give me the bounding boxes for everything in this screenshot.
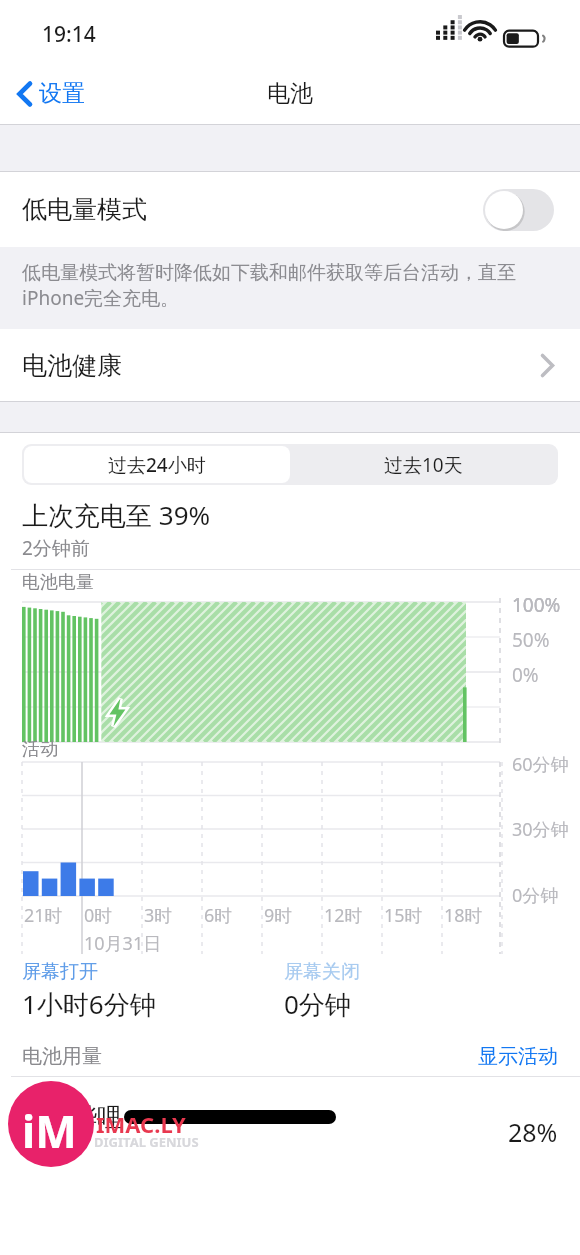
button[interactable]: 过去24小时	[24, 446, 290, 483]
button[interactable]: 低电量模式	[0, 172, 580, 247]
staticText: 9时	[264, 903, 293, 928]
staticText: 15时	[384, 903, 423, 928]
staticText: 过去24小时	[108, 452, 206, 478]
button[interactable]: 显示活动	[478, 1044, 580, 1069]
staticText: 2分钟前	[22, 535, 90, 561]
staticText: 低电量模式将暂时降低如下载和邮件获取等后台活动，直至	[22, 261, 516, 285]
staticText: 设置	[39, 79, 85, 108]
staticText: 上次充电至 39%	[22, 497, 211, 533]
staticText: 电池健康	[22, 350, 122, 381]
staticText: 活动	[22, 738, 58, 761]
staticText: 100%	[512, 592, 561, 618]
staticText: 60分钟	[512, 752, 569, 777]
staticText: 21时	[24, 903, 63, 928]
staticText: 50%	[512, 627, 550, 653]
staticText: 0时	[84, 903, 113, 928]
staticText: 12时	[324, 903, 363, 928]
staticText: iPhone完全充电。	[22, 285, 180, 311]
staticText: 屏幕打开	[22, 960, 98, 984]
staticText: 1小时6分钟	[22, 986, 156, 1022]
button[interactable]: 低电量模式开关	[483, 189, 554, 231]
staticText: 低电量模式	[22, 194, 147, 225]
staticText: 100%	[512, 592, 561, 618]
button[interactable]: 哔哩哔哩	[0, 1077, 580, 1149]
staticText: 电池电量	[22, 571, 94, 594]
staticText: 显示活动	[478, 1044, 558, 1069]
staticText: 0%	[512, 662, 539, 688]
staticText: 19:14	[42, 20, 96, 49]
staticText: iM	[22, 1101, 77, 1161]
staticText: 屏幕关闭	[284, 960, 360, 984]
staticText: 0分钟	[284, 986, 351, 1022]
staticText: 10月31日	[84, 931, 162, 956]
button[interactable]: 过去10天	[290, 446, 556, 483]
staticText: 0分钟	[512, 883, 559, 908]
staticText: 3时	[144, 903, 173, 928]
button[interactable]: 电池健康	[0, 329, 580, 401]
staticText: 电池用量	[22, 1044, 102, 1069]
staticText: 哔哩哔哩	[22, 1102, 122, 1133]
staticText: 6时	[204, 903, 233, 928]
staticText: DIGITAL GENIUS	[94, 1133, 199, 1151]
staticText: 30分钟	[512, 817, 569, 842]
staticText: 电池	[267, 79, 313, 108]
staticText: 过去10天	[384, 452, 463, 478]
staticText: 28%	[508, 1115, 558, 1149]
staticText: 18时	[444, 903, 483, 928]
staticText: IMAC.LY	[96, 1109, 186, 1139]
button[interactable]: 设置	[12, 73, 91, 114]
